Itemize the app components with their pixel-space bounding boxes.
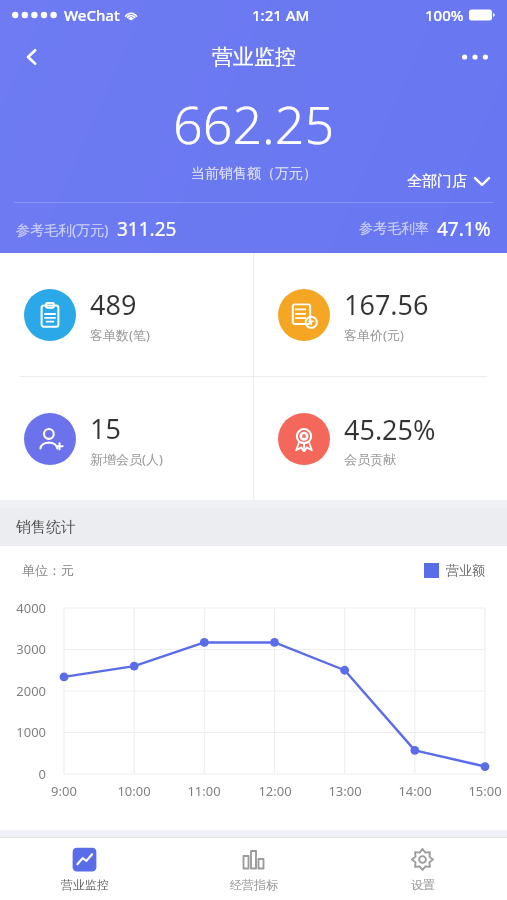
staticText: 会员贡献: [344, 451, 396, 467]
button[interactable]: 15: [0, 377, 253, 500]
staticText: 47.1%: [437, 216, 491, 242]
staticText: 311.25: [117, 216, 177, 242]
button[interactable]: 设置: [338, 838, 507, 900]
staticText: 营业监控: [212, 44, 296, 70]
staticText: 营业监控: [61, 877, 109, 892]
staticText: 15: [90, 410, 121, 447]
staticText: 全部门店: [407, 172, 467, 191]
staticText: 2000: [0, 682, 46, 700]
staticText: 参考毛利率: [359, 220, 429, 238]
staticText: 3000: [0, 640, 46, 658]
staticText: 客单数(笔): [90, 326, 150, 344]
staticText: 9:00: [42, 782, 86, 800]
staticText: 营业额: [446, 562, 485, 578]
staticText: 13:00: [323, 782, 367, 800]
staticText: 单位：元: [22, 562, 74, 578]
staticText: 11:00: [182, 782, 226, 800]
button[interactable]: 经营指标: [169, 838, 338, 900]
staticText: 1:21 AM: [252, 5, 310, 25]
button[interactable]: 489: [0, 253, 253, 376]
staticText: 489: [90, 286, 137, 323]
staticText: 662.25: [173, 88, 335, 159]
staticText: 设置: [411, 877, 435, 892]
staticText: 45.25%: [344, 411, 436, 448]
button[interactable]: 营业监控: [0, 838, 169, 900]
staticText: 100%: [425, 5, 464, 25]
button[interactable]: Back: [10, 35, 54, 79]
staticText: WeChat: [64, 5, 120, 25]
staticText: 15:00: [463, 782, 507, 800]
staticText: 12:00: [253, 782, 297, 800]
button[interactable]: More options: [453, 35, 497, 79]
button[interactable]: 全部门店: [403, 168, 493, 195]
staticText: 销售统计: [16, 518, 76, 537]
staticText: 10:00: [112, 782, 156, 800]
staticText: 4000: [0, 599, 46, 617]
staticText: 参考毛利(万元): [16, 220, 109, 239]
staticText: 客单价(元): [344, 326, 404, 344]
button[interactable]: 167.56: [254, 253, 507, 376]
staticText: 1000: [0, 723, 46, 741]
staticText: 经营指标: [230, 877, 278, 892]
staticText: 0: [0, 765, 46, 783]
staticText: 14:00: [393, 782, 437, 800]
staticText: 新增会员(人): [90, 450, 163, 468]
button[interactable]: 45.25%: [254, 377, 507, 500]
staticText: 当前销售额（万元）: [191, 165, 317, 183]
staticText: 167.56: [344, 286, 429, 323]
